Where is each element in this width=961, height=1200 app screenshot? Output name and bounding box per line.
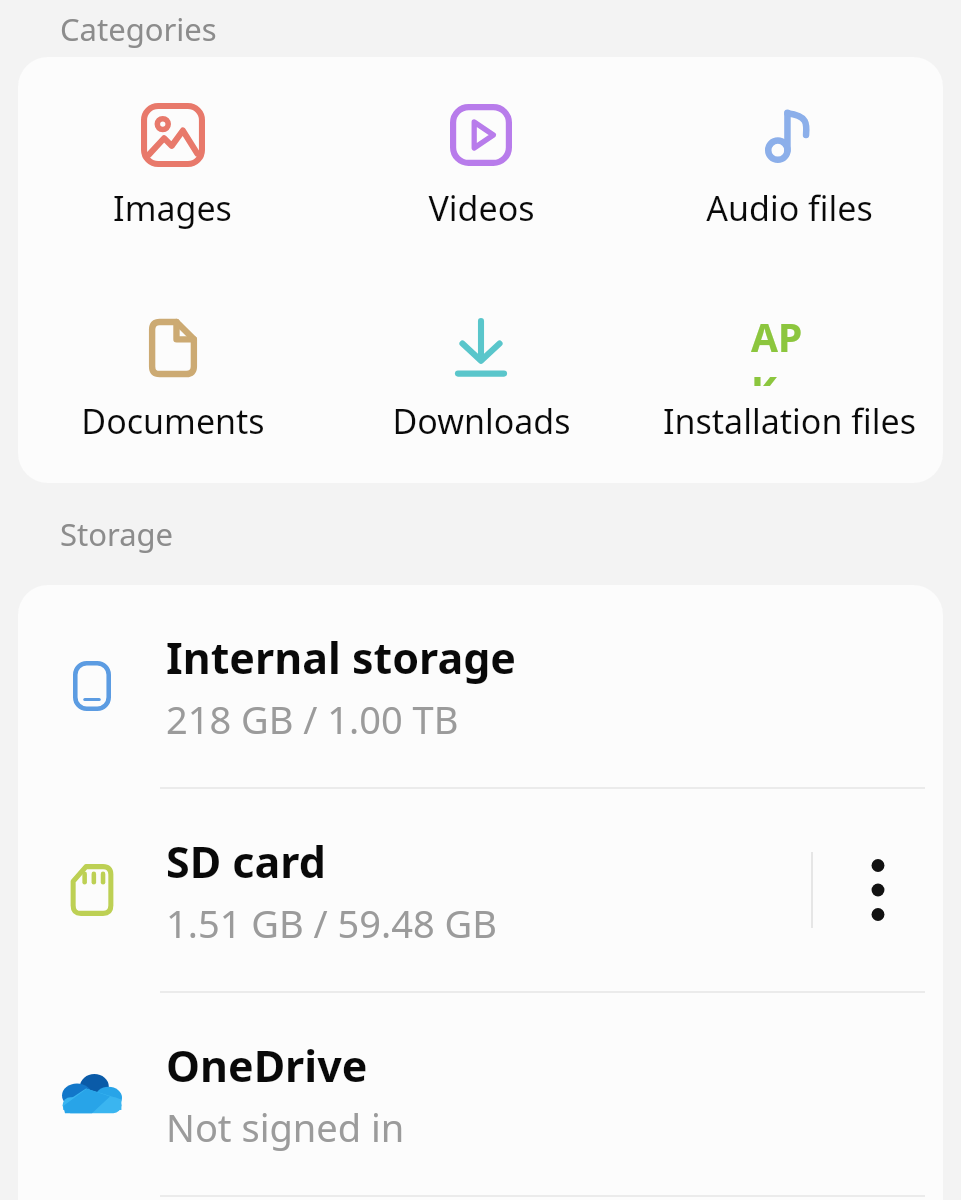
staticText: Storage (60, 513, 174, 555)
staticText: Not signed in (166, 1101, 405, 1153)
button[interactable]: Documents (18, 270, 327, 483)
staticText: Audio files (706, 185, 873, 231)
staticText: 218 GB / 1.00 TB (166, 693, 459, 745)
button[interactable]: Images (18, 57, 327, 270)
staticText: SD card (166, 832, 326, 891)
button[interactable]: More options (813, 789, 943, 991)
staticText: Documents (81, 398, 265, 444)
button[interactable]: Downloads (327, 270, 635, 483)
staticText: Images (113, 185, 232, 231)
button[interactable]: Internal storage (18, 585, 943, 787)
button[interactable]: Videos (327, 57, 635, 270)
button[interactable]: Audio files (635, 57, 943, 270)
staticText: OneDrive (166, 1036, 368, 1095)
staticText: Internal storage (166, 628, 517, 687)
staticText: 1.51 GB / 59.48 GB (166, 897, 497, 949)
button[interactable]: APK (635, 270, 943, 483)
button[interactable]: OneDrive (18, 993, 943, 1195)
staticText: Videos (428, 185, 535, 231)
staticText: APK (751, 310, 827, 386)
staticText: Downloads (392, 398, 571, 444)
button[interactable]: SD card (18, 789, 943, 991)
staticText: Installation files (663, 398, 916, 444)
staticText: Categories (60, 8, 217, 50)
